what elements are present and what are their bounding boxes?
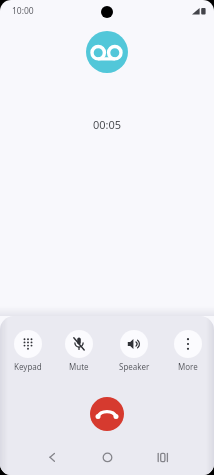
- button[interactable]: Speaker: [108, 330, 160, 372]
- staticText: Speaker: [119, 361, 150, 372]
- staticText: 00:05: [93, 117, 122, 131]
- button[interactable]: [90, 397, 124, 431]
- button[interactable]: [38, 444, 66, 472]
- button[interactable]: [148, 444, 176, 472]
- button[interactable]: More: [162, 330, 214, 372]
- staticText: More: [178, 361, 198, 372]
- button[interactable]: [93, 444, 121, 472]
- staticText: 10:00: [12, 5, 34, 17]
- button[interactable]: Keypad: [2, 330, 54, 372]
- button[interactable]: Mute: [53, 330, 105, 372]
- staticText: Mute: [69, 361, 89, 372]
- staticText: Keypad: [14, 361, 42, 372]
